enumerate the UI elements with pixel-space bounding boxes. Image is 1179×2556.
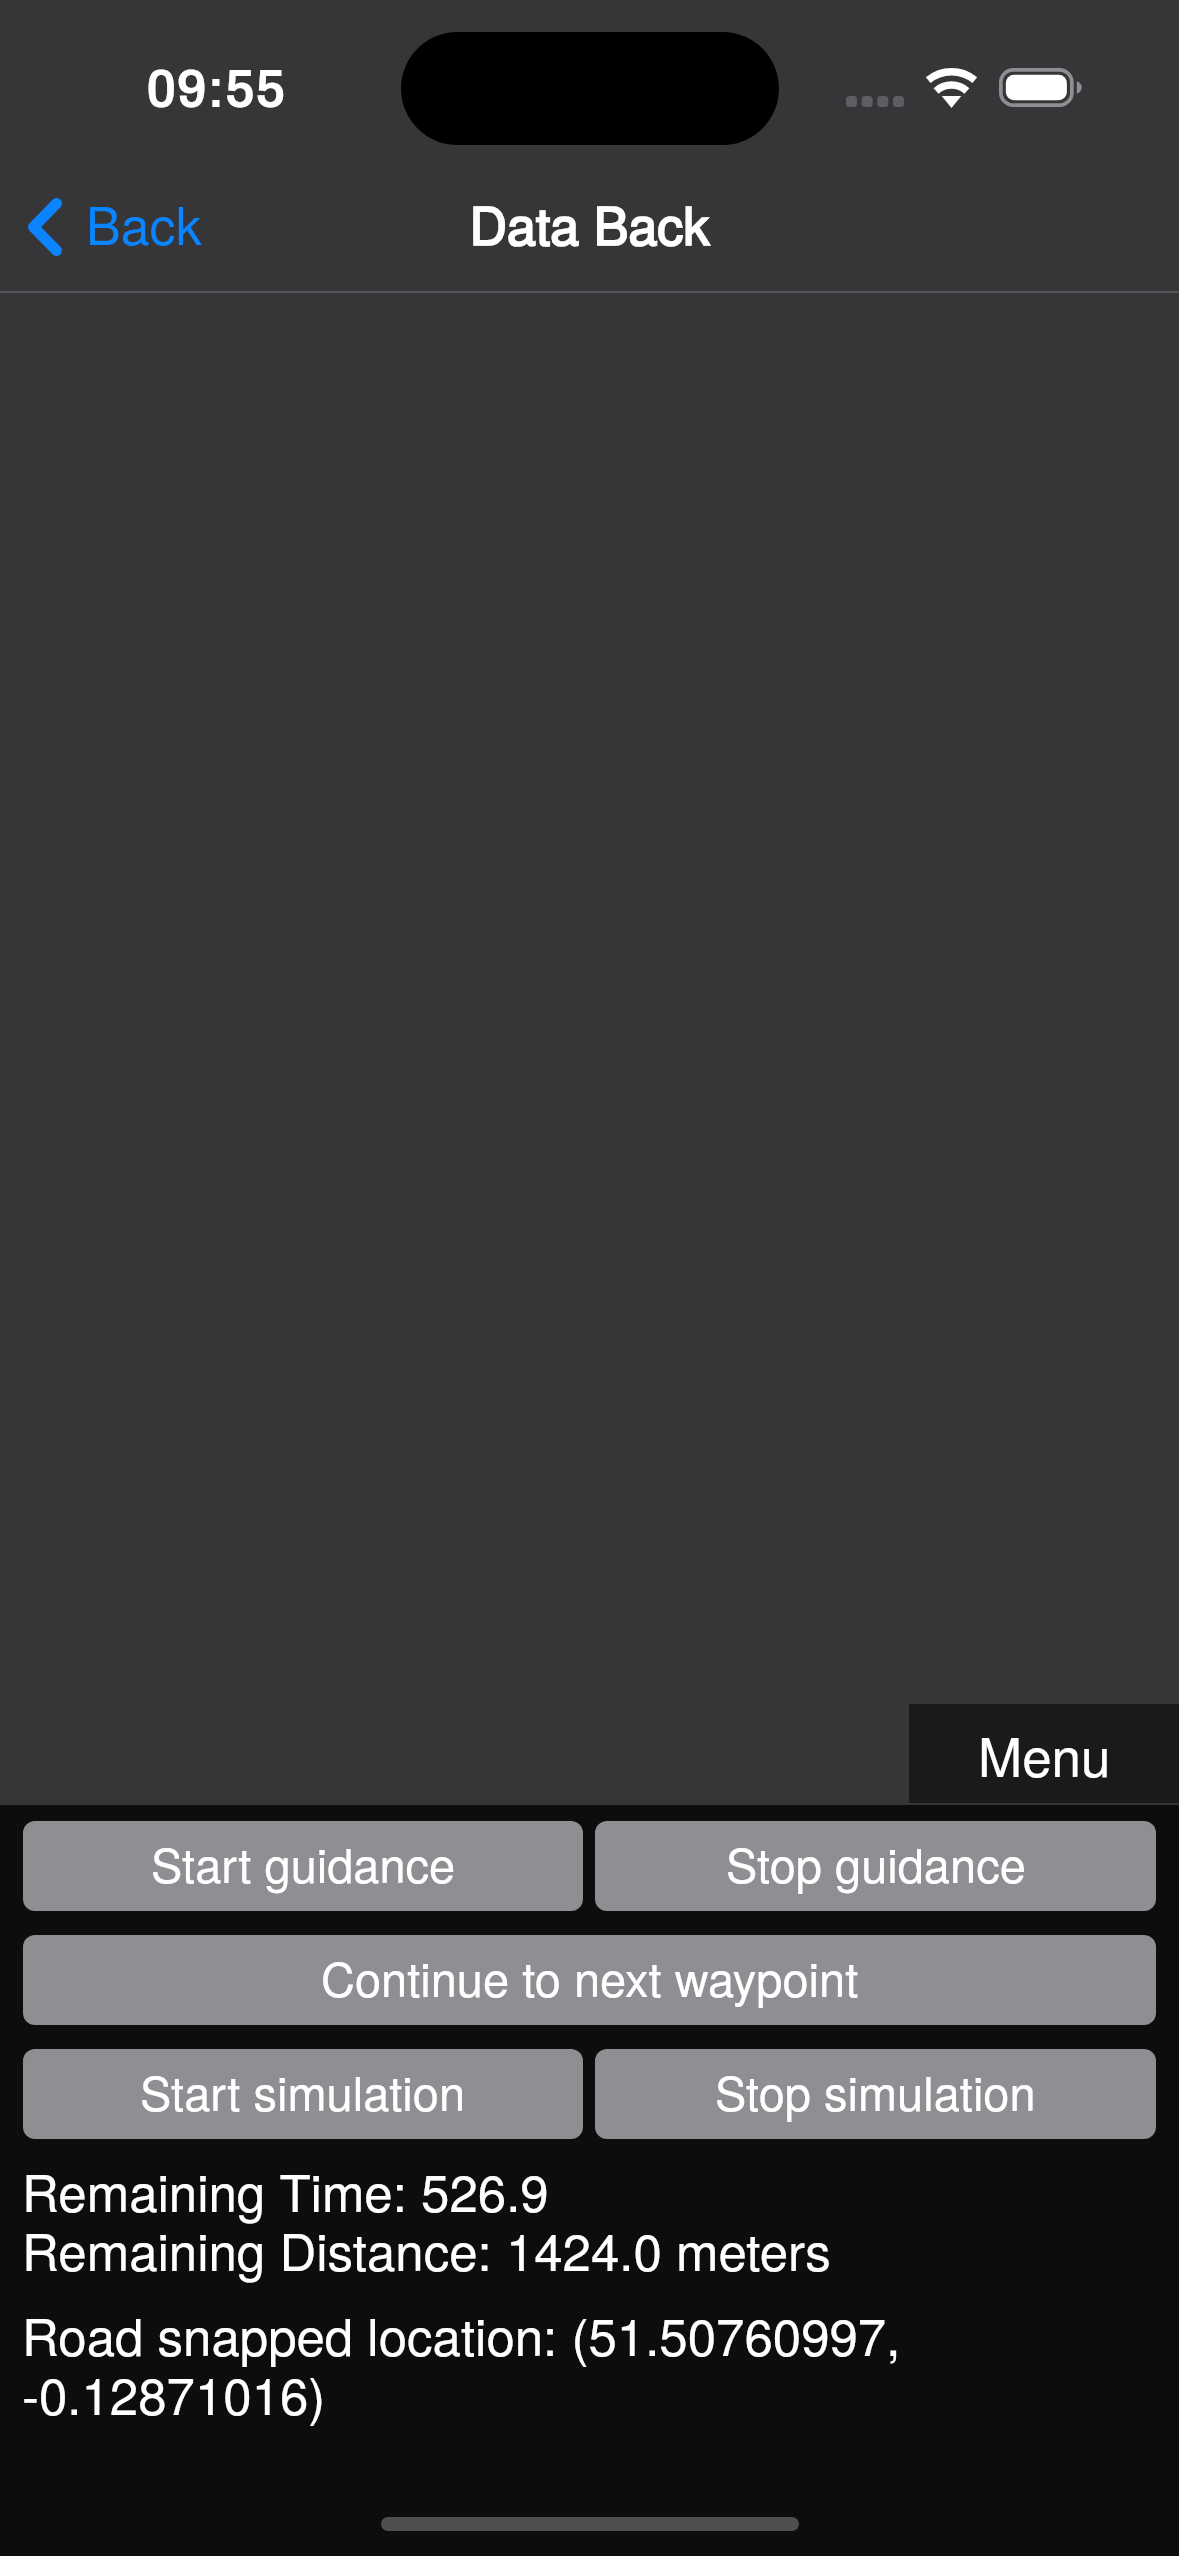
button[interactable]: Stop guidance: [595, 1821, 1156, 1911]
staticText: Menu: [978, 1716, 1111, 1792]
staticText: Back: [86, 185, 202, 259]
staticText: Stop simulation: [715, 2057, 1036, 2124]
button[interactable]: Start guidance: [23, 1821, 583, 1911]
button[interactable]: Continue to next waypoint: [23, 1935, 1156, 2025]
staticText: Road snapped location: (51.50760997, -0.…: [22, 2297, 924, 2430]
staticText: Data Back: [469, 185, 710, 259]
staticText: Continue to next waypoint: [321, 1943, 859, 2010]
button[interactable]: Back: [0, 160, 224, 293]
staticText: Start guidance: [151, 1829, 456, 1896]
staticText: Start simulation: [140, 2057, 466, 2124]
staticText: Stop guidance: [726, 1829, 1026, 1896]
button[interactable]: Menu: [909, 1704, 1179, 1803]
button[interactable]: Stop simulation: [595, 2049, 1156, 2139]
staticText: Remaining Time: 526.9 Remaining Distance…: [22, 2153, 831, 2286]
staticText: 09:55: [146, 60, 286, 118]
button[interactable]: Start simulation: [23, 2049, 583, 2139]
